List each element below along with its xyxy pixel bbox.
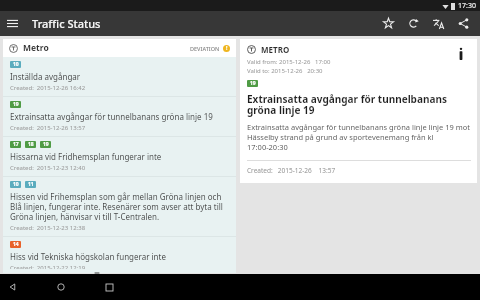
staticText: Traffic Status (32, 16, 101, 31)
staticText: 10 (13, 181, 19, 188)
staticText: 14 (13, 241, 19, 248)
button[interactable]: Translate (426, 11, 451, 36)
staticText: Created: 2015-12-26 16:42 (10, 84, 86, 92)
staticText: Metro (23, 42, 49, 54)
staticText: 19 (43, 141, 49, 148)
staticText: Valid from: 2015-12-26 17:00 (247, 58, 331, 66)
staticText: Valid to: 2015-12-26 20:30 (247, 67, 323, 75)
staticText: 19 (13, 101, 19, 108)
staticText: Extrainsatta avgångar för tunnelbanans g… (247, 122, 471, 152)
button[interactable]: 10 (3, 177, 236, 236)
staticText: ! (226, 45, 228, 52)
button[interactable]: 10 (3, 57, 236, 96)
staticText: Extrainsatta avgångar för tunnelbanans g… (247, 92, 471, 117)
staticText: Created: 2015-12-26 13:57 (10, 124, 86, 132)
button[interactable]: 19 (3, 97, 236, 136)
staticText: 10 (13, 61, 19, 68)
staticText: 18 (28, 141, 34, 148)
staticText: Hiss vid Tekniska högskolan fungerar int… (10, 251, 166, 262)
button[interactable]: 17 (3, 137, 236, 176)
button[interactable]: Recent apps (96, 274, 122, 300)
button[interactable]: Favorite (376, 11, 401, 36)
button[interactable]: 14 (3, 237, 236, 273)
staticText: Created: 2015-12-26 13:57 (247, 166, 336, 175)
staticText: Inställda avgångar (10, 71, 81, 82)
button[interactable]: Metro (3, 39, 236, 57)
staticText: Extrainsatta avgångar för tunnelbanans g… (10, 111, 213, 122)
staticText: METRO (261, 44, 290, 55)
staticText: Created: 2015-12-22 12:19 (10, 264, 86, 269)
button[interactable]: Share (451, 11, 476, 36)
staticText: DEVIATION (190, 45, 220, 52)
staticText: 11 (28, 181, 34, 188)
staticText: Created: 2015-12-23 12:38 (10, 224, 86, 232)
staticText: 17 (13, 141, 19, 148)
staticText: Hissarna vid Fridhemsplan fungerar inte (10, 151, 162, 162)
staticText: Created: 2015-12-23 12:40 (10, 164, 86, 172)
button[interactable]: Back (0, 274, 26, 300)
button[interactable]: Information (451, 44, 471, 64)
staticText: Hissen vid Frihemsplan som går mellan Gr… (10, 191, 230, 222)
staticText: 17:30 (458, 1, 476, 11)
button[interactable]: Home (48, 274, 74, 300)
staticText: 19 (250, 80, 256, 87)
button[interactable]: Refresh (401, 11, 426, 36)
button[interactable]: Open navigation menu (0, 11, 25, 36)
